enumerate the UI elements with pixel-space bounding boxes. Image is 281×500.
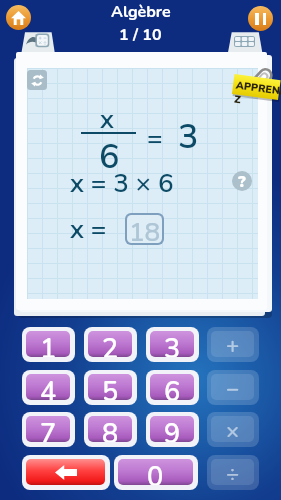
staticText: × bbox=[226, 416, 240, 442]
button[interactable]: × bbox=[211, 416, 254, 442]
button[interactable]: − bbox=[211, 374, 254, 400]
button[interactable]: Home bbox=[6, 5, 31, 30]
button[interactable]: Backspace bbox=[26, 459, 105, 485]
button[interactable]: 9 bbox=[150, 416, 194, 442]
staticText: x bbox=[100, 102, 114, 130]
button[interactable]: Help bbox=[232, 171, 252, 191]
button[interactable]: Pause bbox=[248, 6, 273, 31]
button[interactable]: ÷ bbox=[211, 459, 254, 485]
button[interactable]: Apprenez bbox=[228, 64, 281, 104]
staticText: ? bbox=[238, 171, 246, 191]
button[interactable]: 0 bbox=[118, 459, 193, 485]
staticText: 1 / 10 bbox=[119, 24, 162, 46]
button[interactable]: 7 bbox=[26, 416, 70, 442]
staticText: 6 bbox=[99, 134, 120, 170]
button[interactable]: Keypad bbox=[234, 36, 255, 47]
staticText: 7 bbox=[40, 416, 57, 442]
staticText: 6 bbox=[164, 374, 181, 400]
staticText: 3 bbox=[164, 331, 181, 357]
staticText: 1 bbox=[40, 331, 57, 357]
staticText: APPRENEZ bbox=[233, 78, 281, 112]
button[interactable]: 4 bbox=[26, 374, 70, 400]
staticText: = bbox=[147, 121, 163, 145]
button[interactable]: Refresh bbox=[27, 70, 47, 90]
staticText: 2 bbox=[102, 331, 119, 357]
button[interactable]: 3 bbox=[150, 331, 194, 357]
button[interactable]: 5 bbox=[88, 374, 132, 400]
staticText: 8 bbox=[102, 416, 119, 442]
button[interactable]: 1 bbox=[26, 331, 70, 357]
button[interactable]: Learn bbox=[24, 32, 52, 50]
button[interactable]: + bbox=[211, 331, 254, 357]
staticText: + bbox=[226, 331, 240, 357]
staticText: x = 3 × 6 bbox=[70, 166, 174, 198]
staticText: ÷ bbox=[226, 459, 240, 485]
staticText: 18 bbox=[129, 215, 161, 243]
staticText: 5 bbox=[102, 374, 119, 400]
button[interactable]: 6 bbox=[150, 374, 194, 400]
staticText: − bbox=[226, 374, 240, 400]
button[interactable]: 18 bbox=[127, 215, 162, 243]
staticText: 9 bbox=[164, 416, 181, 442]
button[interactable]: 8 bbox=[88, 416, 132, 442]
staticText: x = bbox=[70, 212, 107, 244]
button[interactable]: 2 bbox=[88, 331, 132, 357]
staticText: Algèbre bbox=[111, 1, 171, 23]
staticText: 0 bbox=[147, 459, 164, 485]
staticText: 3 bbox=[178, 114, 199, 150]
staticText: 4 bbox=[40, 374, 57, 400]
